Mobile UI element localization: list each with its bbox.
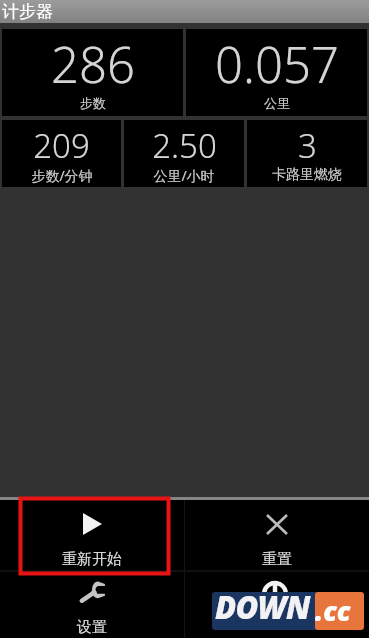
staticText: 2.50 [152,123,217,168]
staticText: 卡路里燃烧 [272,166,342,184]
button[interactable]: Reset [185,500,369,570]
staticText: .cc [315,592,351,629]
staticText: 公里 [264,95,290,111]
staticText: 286 [51,31,135,98]
staticText: 209 [33,123,90,168]
button[interactable]: 286 [2,29,183,116]
staticText: 重置 [262,550,292,569]
button[interactable]: 3 [247,120,367,187]
staticText: 步数 [80,95,106,111]
staticText: 公里/小时 [153,166,215,185]
button[interactable]: 209 [2,120,121,187]
button[interactable]: Settings [0,572,184,638]
staticText: 0.057 [215,31,339,98]
staticText: DOWN [215,586,310,628]
staticText: 3 [298,123,317,168]
button[interactable]: 0.057 [186,29,367,116]
staticText: 步数/分钟 [31,166,93,185]
button[interactable]: Restart [0,500,184,570]
staticText: 计步器 [2,1,53,22]
button[interactable]: 2.50 [124,120,244,187]
staticText: 设置 [77,618,107,637]
staticText: 重新开始 [62,550,122,569]
